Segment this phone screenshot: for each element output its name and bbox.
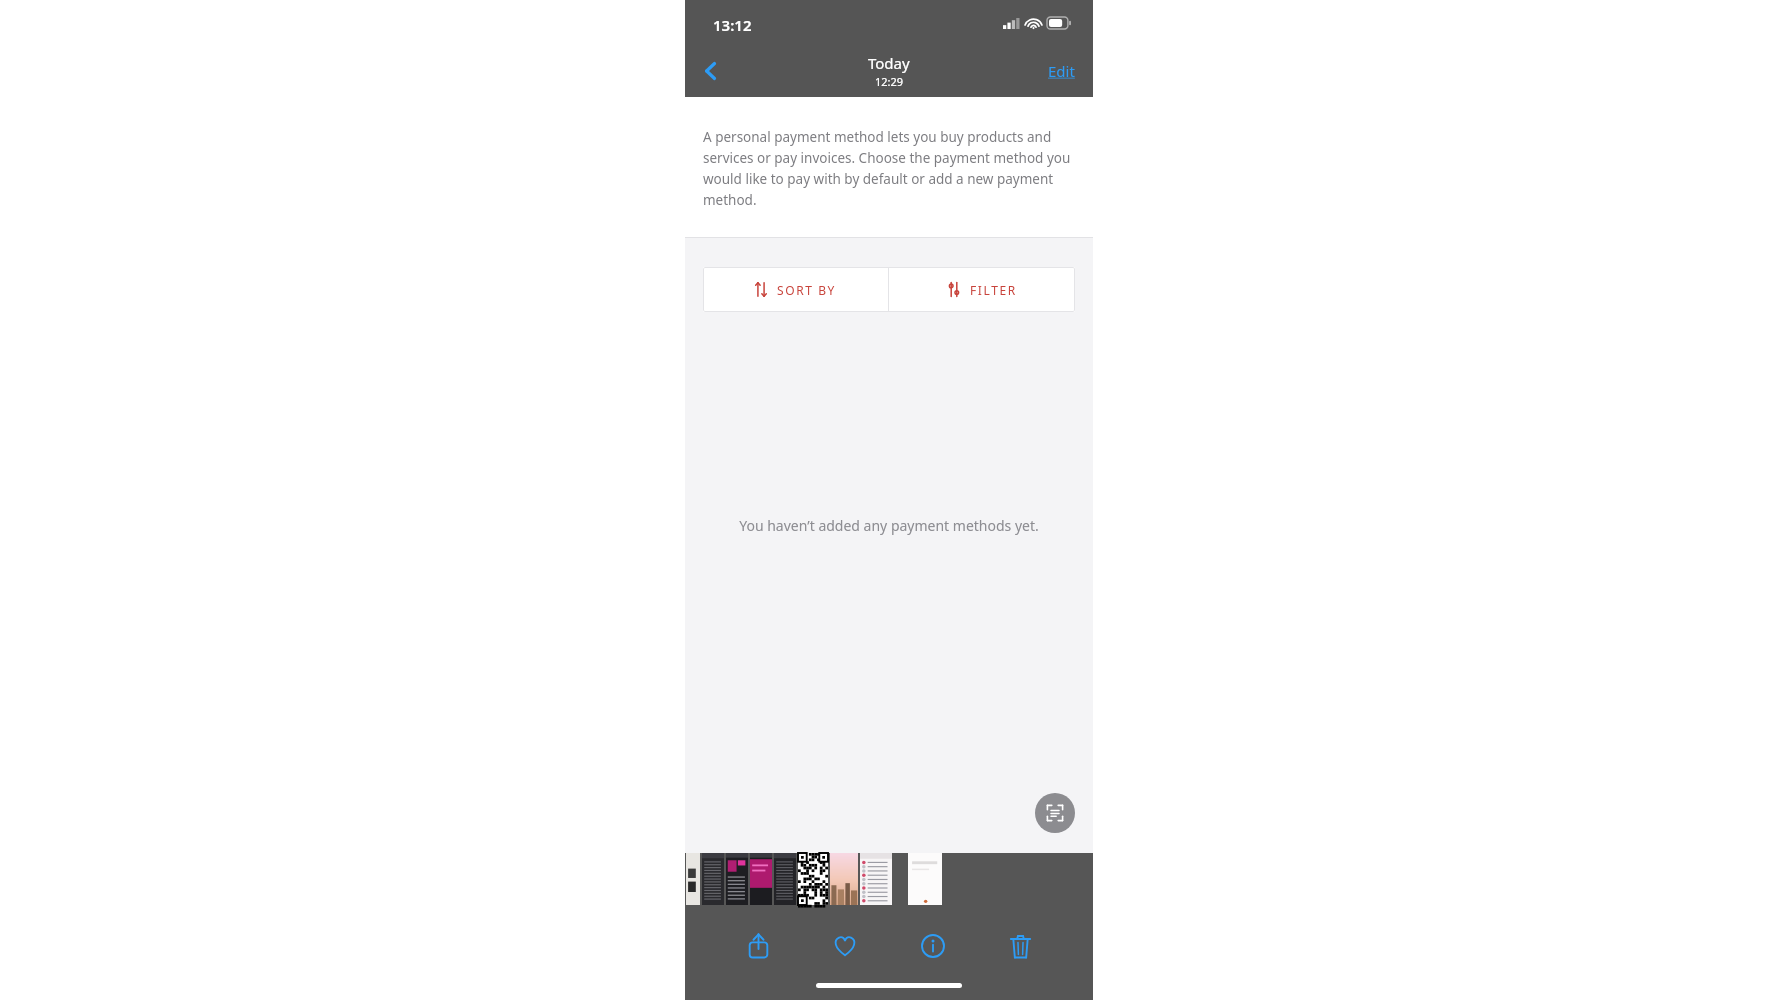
button[interactable]: Screenshot thumbnail: [750, 853, 772, 905]
button[interactable]: Screenshot thumbnail: [908, 853, 942, 905]
staticText: 13:12: [713, 15, 752, 35]
button[interactable]: Share: [735, 923, 781, 969]
staticText: Edit: [1048, 61, 1075, 81]
staticText: You haven’t added any payment methods ye…: [739, 516, 1039, 535]
staticText: 12:29: [875, 74, 904, 89]
button[interactable]: Screenshot thumbnail: [774, 853, 796, 905]
button[interactable]: Scan document: [1035, 793, 1075, 833]
staticText: A personal payment method lets you buy p…: [703, 128, 1075, 209]
button[interactable]: Favourite: [822, 923, 868, 969]
button[interactable]: Screenshot thumbnail: [702, 853, 724, 905]
button[interactable]: Screenshot thumbnail: [798, 853, 828, 905]
button[interactable]: FILTER: [889, 267, 1075, 312]
button[interactable]: Info: [910, 923, 956, 969]
button[interactable]: Screenshot thumbnail: [686, 853, 700, 905]
button[interactable]: Back: [691, 51, 731, 91]
button[interactable]: Screenshot thumbnail: [726, 853, 748, 905]
button[interactable]: Screenshot thumbnail: [830, 853, 858, 905]
button[interactable]: Edit: [1042, 55, 1081, 87]
button[interactable]: Delete: [997, 923, 1043, 969]
button[interactable]: SORT BY: [703, 267, 888, 312]
staticText: Today: [868, 53, 910, 73]
staticText: FILTER: [970, 282, 1017, 298]
button[interactable]: Screenshot thumbnail: [860, 853, 892, 905]
staticText: SORT BY: [777, 282, 837, 298]
